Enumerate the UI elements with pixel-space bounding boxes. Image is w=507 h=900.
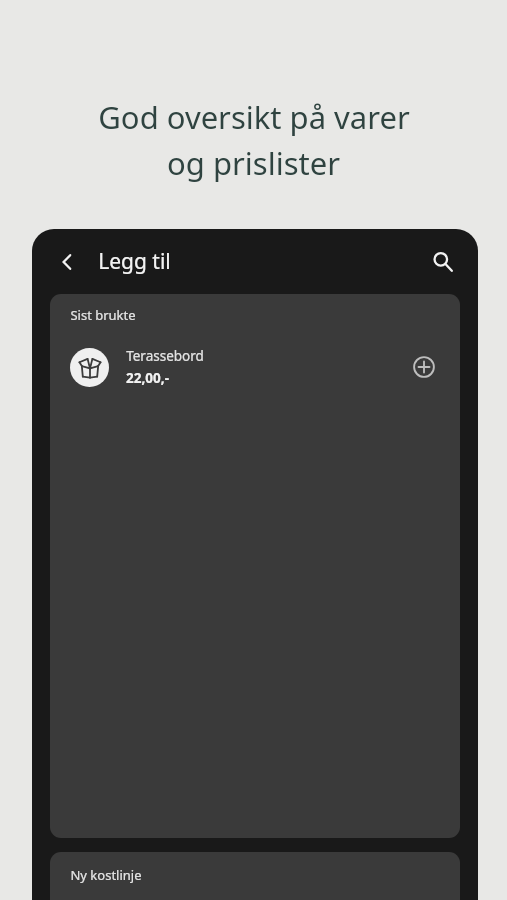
staticText: Legg til	[98, 247, 171, 276]
staticText: God oversikt på varer	[98, 96, 410, 138]
staticText: Sist brukte	[70, 306, 136, 324]
button[interactable]: Ny kostlinje	[50, 852, 460, 900]
button[interactable]: Legg til vare	[406, 349, 442, 385]
button[interactable]: Tilbake	[46, 241, 88, 283]
staticText: 22,00,-	[126, 369, 169, 387]
staticText: Ny kostlinje	[70, 866, 142, 884]
button[interactable]: Søk	[422, 241, 464, 283]
staticText: Terassebord	[126, 347, 204, 365]
staticText: og prislister	[167, 142, 340, 184]
button[interactable]: Terassebord	[50, 337, 460, 397]
